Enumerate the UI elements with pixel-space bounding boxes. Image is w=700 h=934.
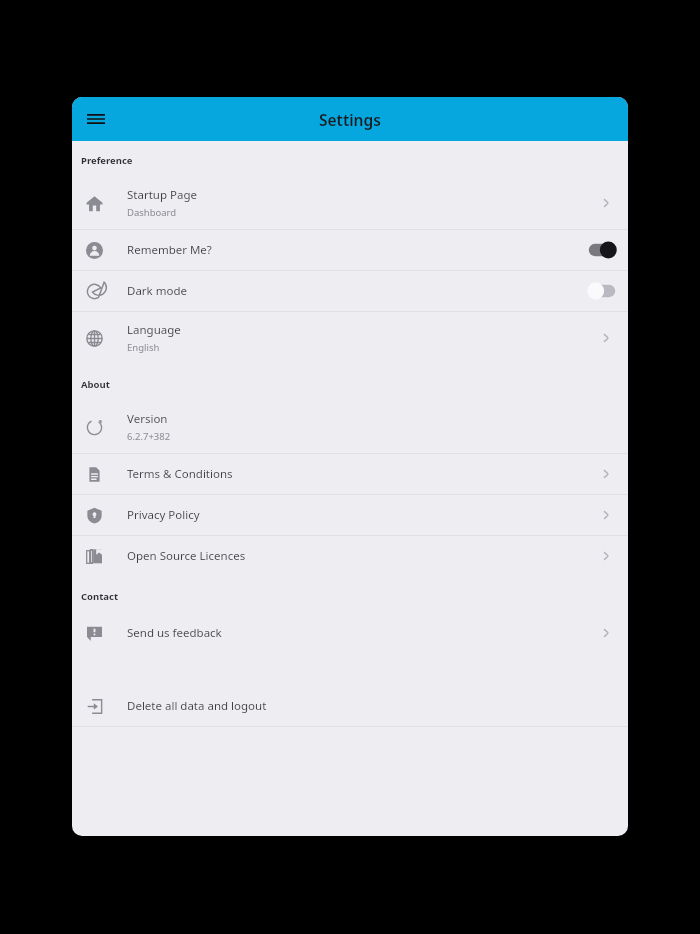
staticText: Language — [127, 322, 181, 338]
staticText: Open Source Licences — [127, 548, 246, 564]
button[interactable]: Terms & Conditions — [72, 454, 628, 494]
staticText: 6.2.7+382 — [127, 430, 171, 443]
other: Open — [598, 195, 614, 211]
other: Open — [598, 507, 614, 523]
button[interactable]: Open Source Licences — [72, 536, 628, 576]
staticText: Version — [127, 411, 168, 427]
staticText: Startup Page — [127, 187, 197, 203]
button[interactable]: Open navigation menu — [77, 100, 115, 138]
staticText: Dashboard — [127, 206, 177, 219]
staticText: Send us feedback — [127, 625, 222, 641]
staticText: Settings — [319, 109, 381, 130]
staticText: English — [127, 341, 160, 354]
button[interactable]: Startup Page — [72, 177, 628, 229]
staticText: Remember Me? — [127, 242, 212, 258]
other: Open — [598, 330, 614, 346]
staticText: Contact — [81, 590, 119, 603]
staticText: Dark mode — [127, 283, 187, 299]
button[interactable]: Dark mode — [72, 271, 628, 311]
staticText: Terms & Conditions — [127, 466, 233, 482]
button[interactable]: Language — [72, 312, 628, 364]
staticText: About — [81, 378, 110, 391]
button[interactable]: Remember Me? — [72, 230, 628, 270]
button[interactable]: Delete all data and logout — [72, 686, 628, 726]
staticText: Privacy Policy — [127, 507, 200, 523]
other: Open — [598, 466, 614, 482]
other: Open — [598, 625, 614, 641]
staticText: Delete all data and logout — [127, 698, 267, 714]
button[interactable]: Toggle off — [585, 280, 619, 302]
other: Open — [598, 548, 614, 564]
button[interactable]: Send us feedback — [72, 613, 628, 653]
button[interactable]: Privacy Policy — [72, 495, 628, 535]
button[interactable]: Version — [72, 401, 628, 453]
staticText: Preference — [81, 154, 133, 167]
button[interactable]: Toggle on — [585, 239, 619, 261]
